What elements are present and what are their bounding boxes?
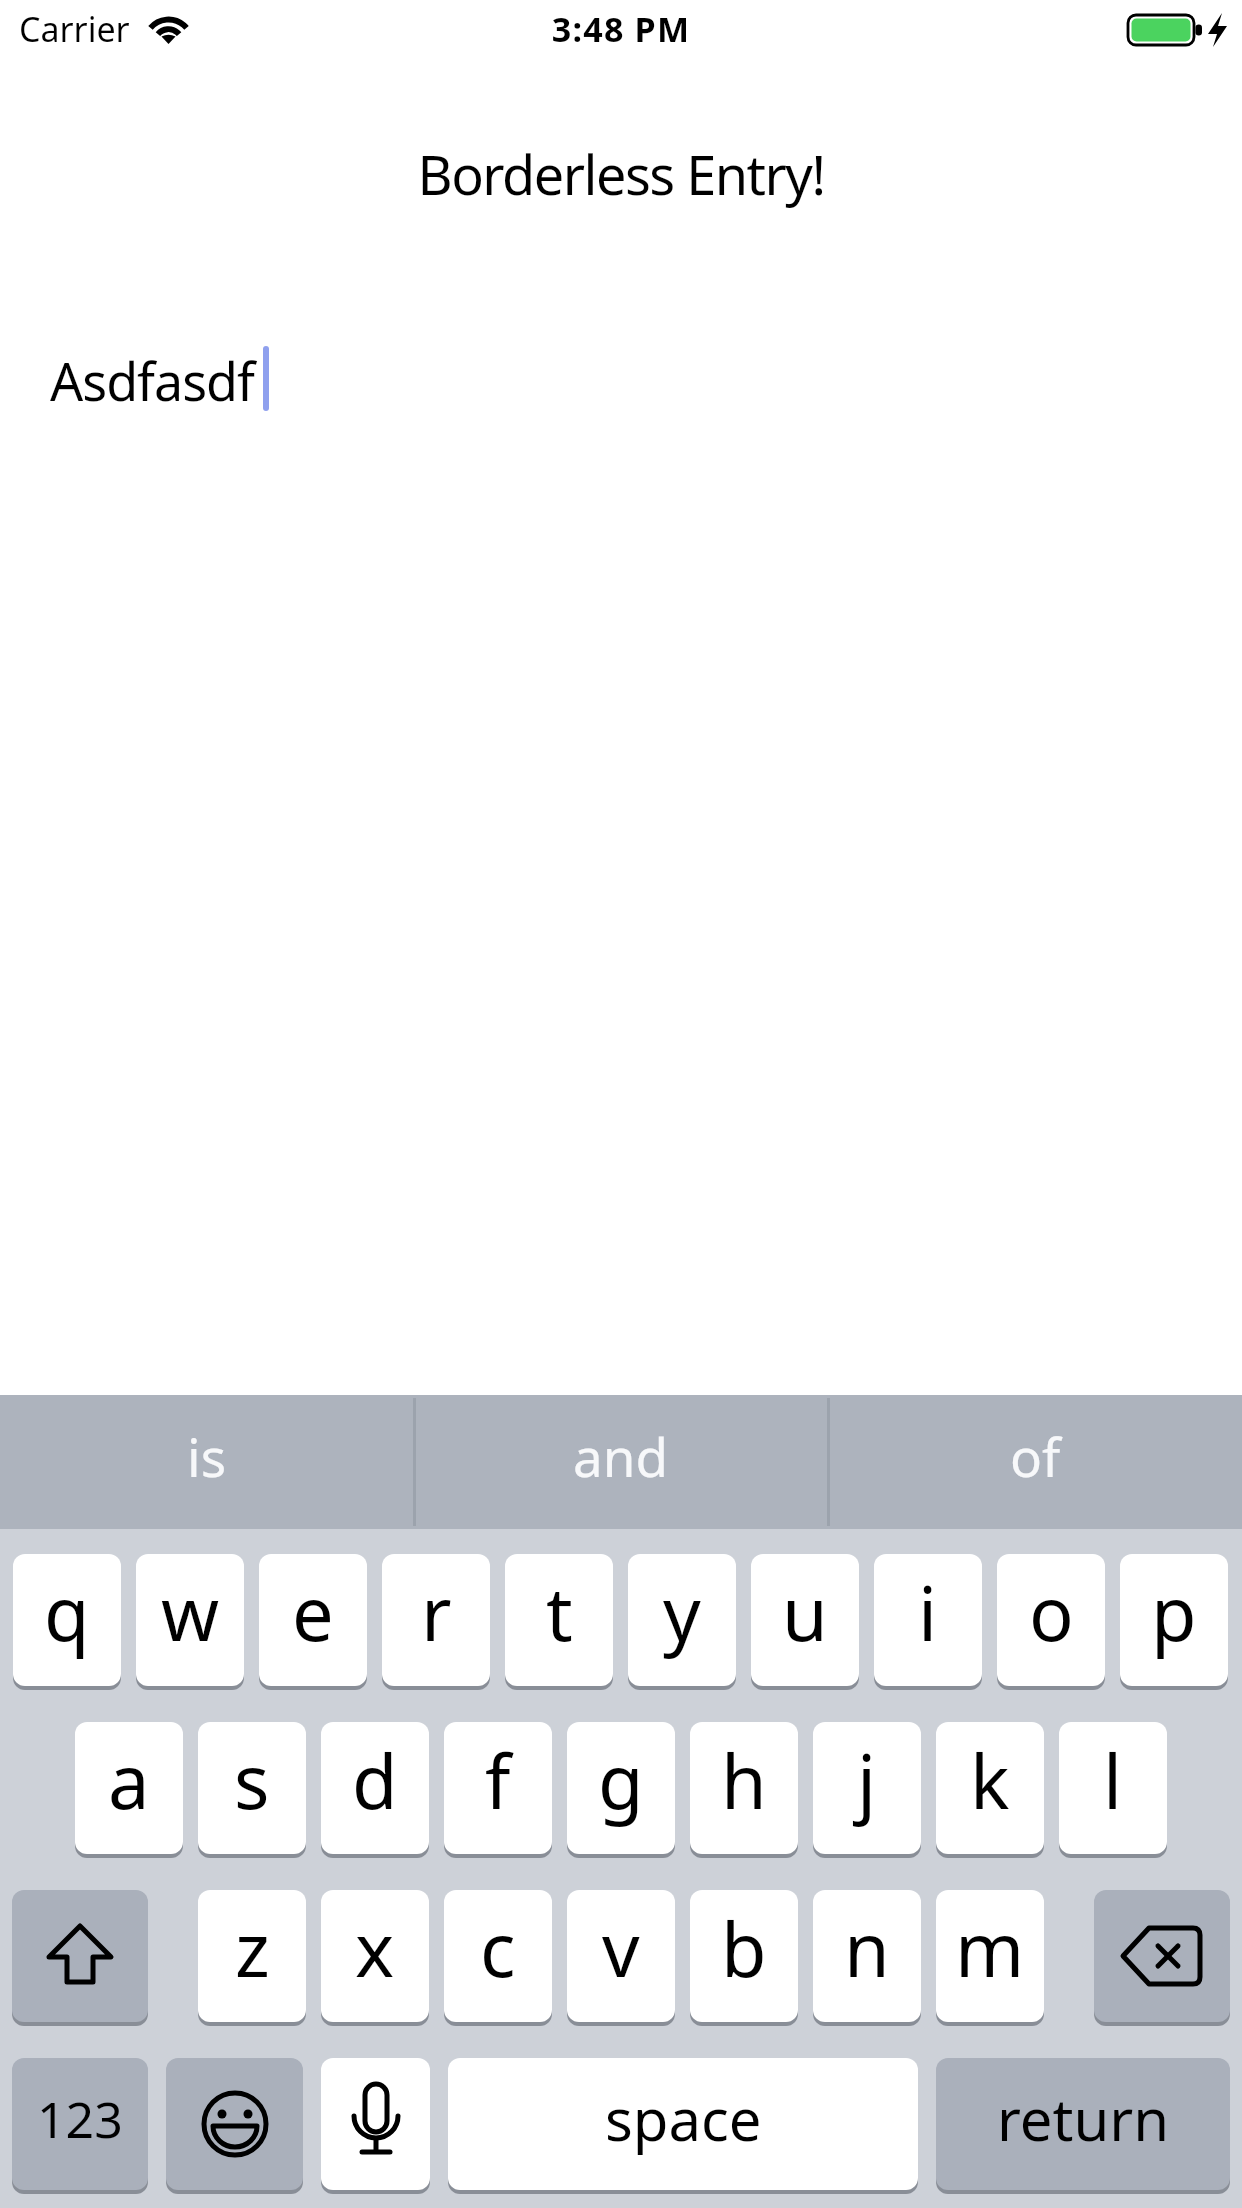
staticText: y: [663, 1562, 701, 1663]
staticText: f: [485, 1730, 511, 1831]
button[interactable]: g: [567, 1722, 675, 1854]
staticText: 123: [37, 2085, 123, 2153]
staticText: g: [598, 1730, 644, 1831]
staticText: Asdfasdf: [50, 345, 254, 416]
staticText: h: [721, 1730, 767, 1831]
staticText: of: [1010, 1420, 1061, 1492]
staticText: and: [573, 1420, 669, 1492]
button[interactable]: u: [751, 1554, 859, 1686]
button[interactable]: c: [444, 1890, 552, 2022]
staticText: q: [44, 1562, 90, 1663]
button[interactable]: e: [259, 1554, 367, 1686]
button[interactable]: of: [828, 1395, 1242, 1529]
button[interactable]: n: [813, 1890, 921, 2022]
button[interactable]: [166, 2058, 303, 2190]
staticText: t: [546, 1562, 573, 1663]
button[interactable]: l: [1059, 1722, 1167, 1854]
staticText: e: [292, 1562, 334, 1663]
button[interactable]: 123: [12, 2058, 148, 2190]
staticText: return: [997, 2079, 1170, 2158]
button[interactable]: [12, 1890, 148, 2022]
button[interactable]: v: [567, 1890, 675, 2022]
staticText: c: [480, 1898, 516, 1999]
button[interactable]: t: [505, 1554, 613, 1686]
staticText: 3:48 PM: [0, 6, 1242, 52]
staticText: i: [918, 1562, 938, 1663]
staticText: is: [187, 1420, 227, 1492]
button[interactable]: and: [414, 1395, 828, 1529]
button[interactable]: [321, 2058, 430, 2190]
staticText: l: [1103, 1730, 1123, 1831]
staticText: n: [844, 1898, 890, 1999]
button[interactable]: z: [198, 1890, 306, 2022]
button[interactable]: d: [321, 1722, 429, 1854]
button[interactable]: return: [936, 2058, 1230, 2190]
staticText: v: [602, 1898, 640, 1999]
staticText: Carrier: [19, 6, 130, 52]
button[interactable]: j: [813, 1722, 921, 1854]
staticText: p: [1151, 1562, 1197, 1663]
staticText: k: [970, 1730, 1010, 1831]
button[interactable]: x: [321, 1890, 429, 2022]
button[interactable]: b: [690, 1890, 798, 2022]
staticText: u: [782, 1562, 828, 1663]
staticText: o: [1029, 1562, 1074, 1663]
staticText: w: [161, 1562, 220, 1663]
button[interactable]: y: [628, 1554, 736, 1686]
staticText: s: [234, 1730, 270, 1831]
button[interactable]: r: [382, 1554, 490, 1686]
staticText: r: [421, 1562, 452, 1663]
button[interactable]: f: [444, 1722, 552, 1854]
button[interactable]: is: [0, 1395, 414, 1529]
button[interactable]: h: [690, 1722, 798, 1854]
staticText: j: [857, 1730, 877, 1831]
staticText: space: [605, 2079, 762, 2158]
button[interactable]: space: [448, 2058, 918, 2190]
button[interactable]: s: [198, 1722, 306, 1854]
staticText: b: [721, 1898, 767, 1999]
button[interactable]: a: [75, 1722, 183, 1854]
staticText: x: [355, 1898, 395, 1999]
staticText: Borderless Entry!: [0, 137, 1242, 211]
staticText: d: [352, 1730, 398, 1831]
button[interactable]: i: [874, 1554, 982, 1686]
button[interactable]: p: [1120, 1554, 1228, 1686]
button[interactable]: [50, 330, 1192, 430]
staticText: m: [955, 1898, 1025, 1999]
button[interactable]: w: [136, 1554, 244, 1686]
button[interactable]: [1094, 1890, 1230, 2022]
button[interactable]: q: [13, 1554, 121, 1686]
button[interactable]: k: [936, 1722, 1044, 1854]
button[interactable]: o: [997, 1554, 1105, 1686]
button[interactable]: m: [936, 1890, 1044, 2022]
staticText: z: [235, 1898, 270, 1999]
staticText: a: [108, 1730, 150, 1831]
